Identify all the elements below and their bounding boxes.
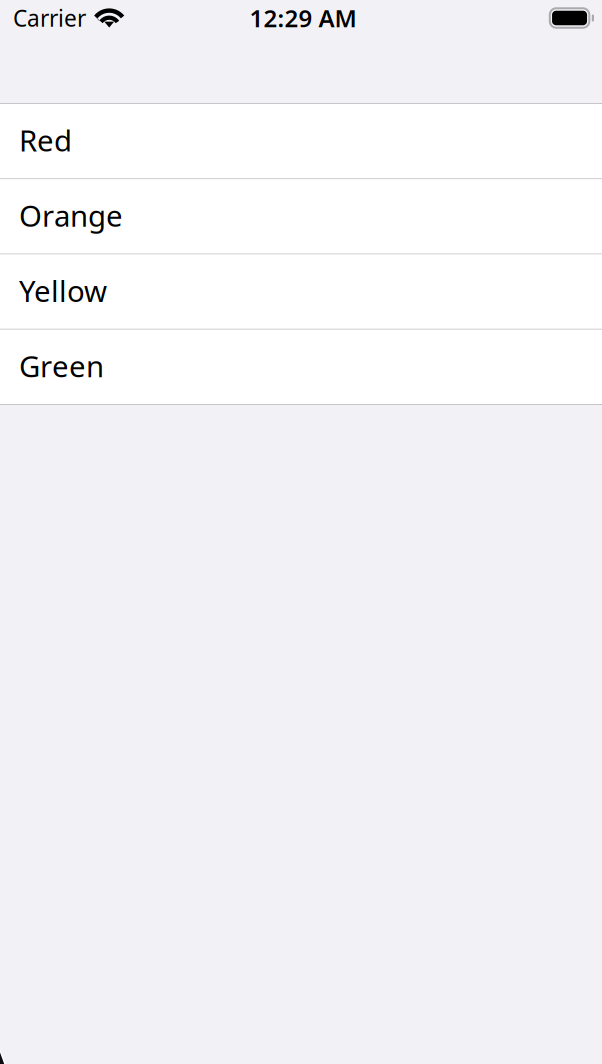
button[interactable]: Red <box>0 104 602 178</box>
button[interactable]: Orange <box>0 179 602 253</box>
button[interactable]: Green <box>0 330 602 404</box>
staticText: Orange <box>19 196 123 235</box>
staticText: 12:29 AM <box>249 2 356 34</box>
staticText: Yellow <box>19 271 107 310</box>
staticText: Carrier <box>13 3 86 33</box>
staticText: Red <box>19 121 72 160</box>
staticText: Green <box>19 346 104 385</box>
button[interactable]: Yellow <box>0 254 602 329</box>
